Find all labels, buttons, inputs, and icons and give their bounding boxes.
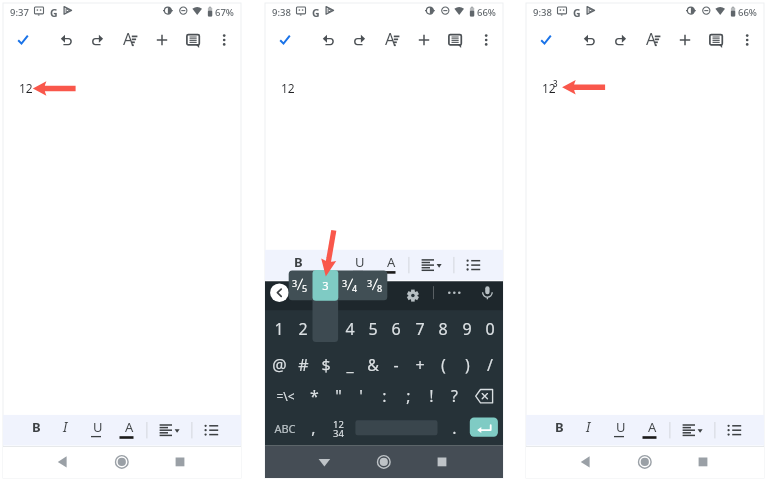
button[interactable]: Home xyxy=(631,448,659,476)
staticText: A xyxy=(385,28,396,50)
button[interactable]: Insert xyxy=(150,28,174,52)
button[interactable]: Hide keyboard xyxy=(310,446,338,474)
button[interactable]: More options xyxy=(474,28,498,52)
button[interactable]: Comments xyxy=(181,28,205,52)
button[interactable]: Italic xyxy=(52,417,76,443)
button[interactable]: Recents xyxy=(428,446,456,474)
staticText: 6 xyxy=(391,318,401,340)
button[interactable]: Undo xyxy=(54,28,78,52)
button[interactable]: Underline xyxy=(346,252,370,278)
staticText: ( xyxy=(441,354,446,376)
staticText: A xyxy=(123,28,134,50)
button[interactable]: Bold xyxy=(282,252,306,278)
staticText: ? xyxy=(451,385,458,407)
staticText: 9:38 xyxy=(533,6,552,19)
staticText: ; xyxy=(406,385,411,407)
staticText: 4 xyxy=(345,318,355,340)
button[interactable]: Comments xyxy=(704,28,728,52)
button[interactable]: More options xyxy=(212,28,236,52)
staticText: 3 xyxy=(342,277,348,289)
staticText: =\< xyxy=(276,388,295,404)
button[interactable]: Underline xyxy=(84,417,108,443)
button[interactable]: Back xyxy=(48,448,76,476)
button[interactable]: Alignment xyxy=(680,417,704,443)
staticText: 12 xyxy=(333,418,344,431)
staticText: 0 xyxy=(485,318,495,340)
button[interactable]: Bold xyxy=(20,417,44,443)
button[interactable]: Insert xyxy=(412,28,436,52)
button[interactable]: Recents xyxy=(166,448,194,476)
button[interactable]: Done xyxy=(273,28,297,52)
button[interactable]: Comments xyxy=(443,28,467,52)
staticText: - xyxy=(393,354,399,376)
staticText: U xyxy=(616,418,626,436)
staticText: B xyxy=(294,253,303,271)
button[interactable]: Redo xyxy=(609,28,633,52)
staticText: 67% xyxy=(215,6,234,19)
staticText: B xyxy=(32,418,41,436)
staticText: G xyxy=(573,6,581,20)
button[interactable]: Italic xyxy=(575,417,599,443)
staticText: 9:37 xyxy=(10,6,29,19)
staticText: 9:38 xyxy=(272,6,291,19)
staticText: ) xyxy=(465,354,470,376)
staticText: G xyxy=(50,6,58,20)
staticText: U xyxy=(355,253,365,271)
button[interactable]: Bold xyxy=(543,417,567,443)
button[interactable]: Text formatting xyxy=(380,28,404,52)
button[interactable]: Text colour xyxy=(115,417,139,443)
button[interactable]: Done xyxy=(11,28,35,52)
button[interactable]: Undo xyxy=(577,28,601,52)
button[interactable]: Home xyxy=(370,446,398,474)
staticText: I xyxy=(586,418,591,436)
button[interactable]: Text formatting xyxy=(118,28,142,52)
staticText: I xyxy=(325,253,330,271)
staticText: B xyxy=(555,418,564,436)
button[interactable]: Done xyxy=(534,28,558,52)
staticText: " xyxy=(335,385,342,407)
button[interactable]: List xyxy=(723,417,747,443)
staticText: @ xyxy=(272,354,287,376)
button[interactable]: Recents xyxy=(689,448,717,476)
button[interactable]: Redo xyxy=(86,28,110,52)
staticText: U xyxy=(93,418,103,436)
button[interactable]: More options xyxy=(735,28,759,52)
button[interactable]: Text colour xyxy=(377,252,401,278)
button[interactable]: Underline xyxy=(607,417,631,443)
button[interactable]: List xyxy=(462,252,486,278)
button[interactable]: Redo xyxy=(348,28,372,52)
staticText: + xyxy=(415,354,425,376)
button[interactable]: Alignment xyxy=(419,252,443,278)
staticText: 3 xyxy=(292,277,298,289)
staticText: 1 xyxy=(274,318,284,340)
button[interactable]: Alignment xyxy=(157,417,181,443)
staticText: _ xyxy=(346,354,354,376)
staticText: 7 xyxy=(415,318,425,340)
staticText: # xyxy=(298,354,309,376)
staticText: 9 xyxy=(462,318,472,340)
staticText: . xyxy=(452,417,457,439)
staticText: I xyxy=(63,418,68,436)
staticText: : xyxy=(382,385,387,407)
staticText: * xyxy=(310,385,319,407)
staticText: 66% xyxy=(738,6,757,19)
button[interactable]: Italic xyxy=(314,252,338,278)
staticText: A xyxy=(387,253,396,271)
staticText: ABC xyxy=(274,421,296,436)
staticText: 3 xyxy=(553,78,558,89)
staticText: $ xyxy=(321,354,331,376)
staticText: 34 xyxy=(333,427,344,440)
button[interactable]: List xyxy=(200,417,224,443)
staticText: 12 xyxy=(19,80,33,96)
button[interactable]: Insert xyxy=(673,28,697,52)
staticText: 2 xyxy=(298,318,308,340)
button[interactable]: Text colour xyxy=(638,417,662,443)
staticText: A xyxy=(648,418,657,436)
staticText: 4 xyxy=(352,282,358,294)
button[interactable]: Text formatting xyxy=(641,28,665,52)
staticText: 3 xyxy=(367,277,373,289)
staticText: & xyxy=(367,354,379,376)
button[interactable]: Undo xyxy=(316,28,340,52)
button[interactable]: Back xyxy=(571,448,599,476)
button[interactable]: Home xyxy=(108,448,136,476)
